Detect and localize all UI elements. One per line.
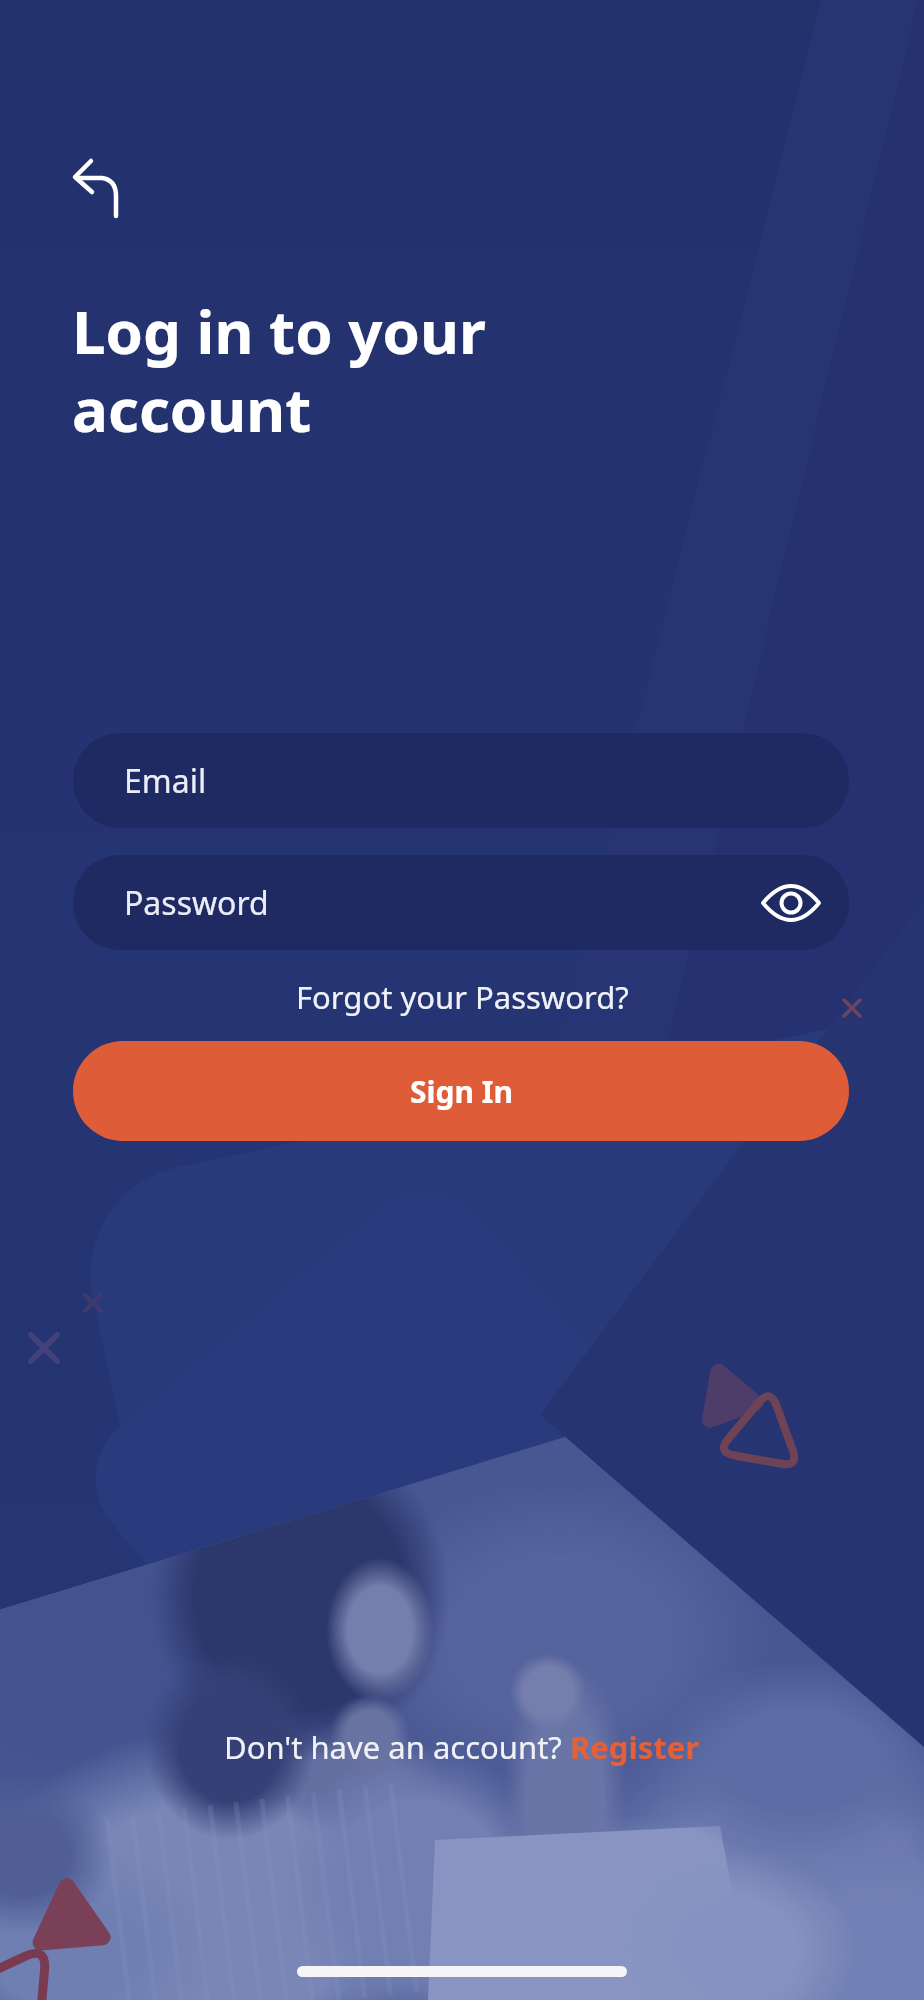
staticText: Sign In [410, 1071, 513, 1112]
button[interactable]: Don't have an account? [0, 1726, 924, 1768]
staticText: Log in to your account [72, 290, 486, 450]
button[interactable]: Email [73, 733, 849, 828]
staticText: Don't have an account? [224, 1726, 570, 1768]
button[interactable]: Sign In [73, 1041, 849, 1141]
button[interactable]: Password [73, 855, 849, 950]
staticText: Register [570, 1726, 700, 1768]
staticText: Email [124, 759, 207, 803]
button[interactable] [60, 146, 132, 218]
staticText: Password [124, 881, 269, 925]
button[interactable]: Forgot your Password? [296, 976, 629, 1018]
